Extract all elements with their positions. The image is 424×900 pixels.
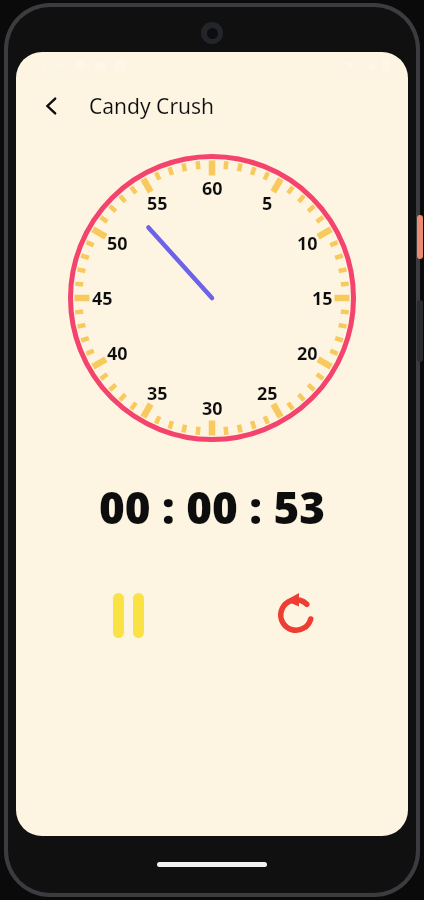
staticText: 00 : 00 : 53: [16, 477, 408, 537]
staticText: 55: [147, 191, 168, 216]
staticText: 50: [107, 231, 128, 256]
staticText: 40: [107, 341, 128, 366]
staticText: 5: [262, 191, 273, 216]
button[interactable]: Pause: [96, 583, 160, 647]
staticText: 30: [202, 396, 223, 421]
staticText: 20: [297, 341, 318, 366]
button[interactable]: Back: [30, 84, 74, 128]
staticText: Candy Crush: [89, 92, 215, 121]
staticText: 45: [92, 286, 113, 311]
staticText: 25: [257, 381, 278, 406]
staticText: 15: [312, 286, 333, 311]
button[interactable]: Reset: [264, 583, 328, 647]
staticText: 35: [147, 381, 168, 406]
staticText: 10: [297, 231, 318, 256]
staticText: 60: [202, 176, 223, 201]
